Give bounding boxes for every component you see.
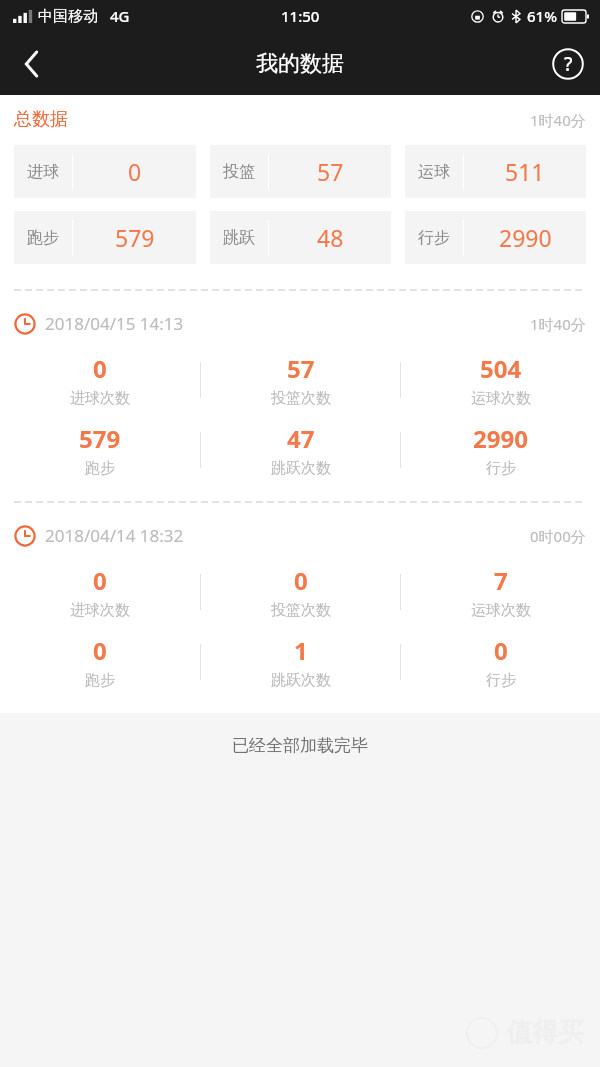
staticText: 0 [294,564,308,597]
staticText: 已经全部加载完毕 [232,735,368,756]
staticText: 跑步 [85,459,115,478]
staticText: 0 [93,352,107,385]
staticText: 0时00分 [530,526,586,546]
staticText: ? [564,51,573,77]
button[interactable]: Back [0,32,62,95]
staticText: 504 [480,352,522,385]
staticText: 0 [494,634,508,667]
button[interactable]: 运球 [405,145,586,198]
staticText: 跑步 [85,671,115,690]
staticText: 57 [287,352,315,385]
button[interactable]: 2018/04/14 18:32 [0,503,600,713]
staticText: 7 [494,564,508,597]
staticText: 11:50 [281,6,320,26]
staticText: 行步 [486,459,516,478]
staticText: 579 [115,222,155,253]
staticText: 2990 [499,222,552,253]
staticText: 579 [79,422,121,455]
staticText: 行步 [486,671,516,690]
staticText: 投篮次数 [271,601,331,620]
staticText: 运球 [418,162,450,182]
staticText: 进球 [27,162,59,182]
staticText: 运球次数 [471,389,531,408]
staticText: 投篮次数 [271,389,331,408]
staticText: 0 [128,156,142,187]
staticText: 2018/04/15 14:13 [45,312,184,335]
staticText: 总数据 [14,108,68,131]
staticText: 中国移动 [38,7,98,26]
staticText: 61% [527,6,557,26]
staticText: 0 [93,564,107,597]
staticText: 511 [505,156,545,187]
button[interactable]: 行步 [405,211,586,264]
staticText: 进球次数 [70,601,130,620]
staticText: 1时40分 [530,110,586,130]
button[interactable]: 跳跃 [210,211,391,264]
staticText: 1 [294,634,308,667]
staticText: 47 [287,422,315,455]
staticText: 行步 [418,228,450,248]
button[interactable]: Help [536,32,600,95]
staticText: 我的数据 [256,50,344,78]
button[interactable]: 跑步 [14,211,196,264]
staticText: 投篮 [223,162,255,182]
staticText: 运球次数 [471,601,531,620]
staticText: 4G [110,6,130,26]
staticText: 跑步 [27,228,59,248]
staticText: 1时40分 [530,314,586,334]
staticText: 2990 [473,422,528,455]
button[interactable]: 进球 [14,145,196,198]
staticText: 进球次数 [70,389,130,408]
staticText: 跳跃次数 [271,459,331,478]
button[interactable]: 2018/04/15 14:13 [0,291,600,501]
button[interactable]: 投篮 [210,145,391,198]
staticText: 跳跃次数 [271,671,331,690]
staticText: 48 [317,222,344,253]
staticText: 跳跃 [223,228,255,248]
staticText: 0 [93,634,107,667]
staticText: 2018/04/14 18:32 [45,524,184,547]
staticText: 57 [317,156,344,187]
